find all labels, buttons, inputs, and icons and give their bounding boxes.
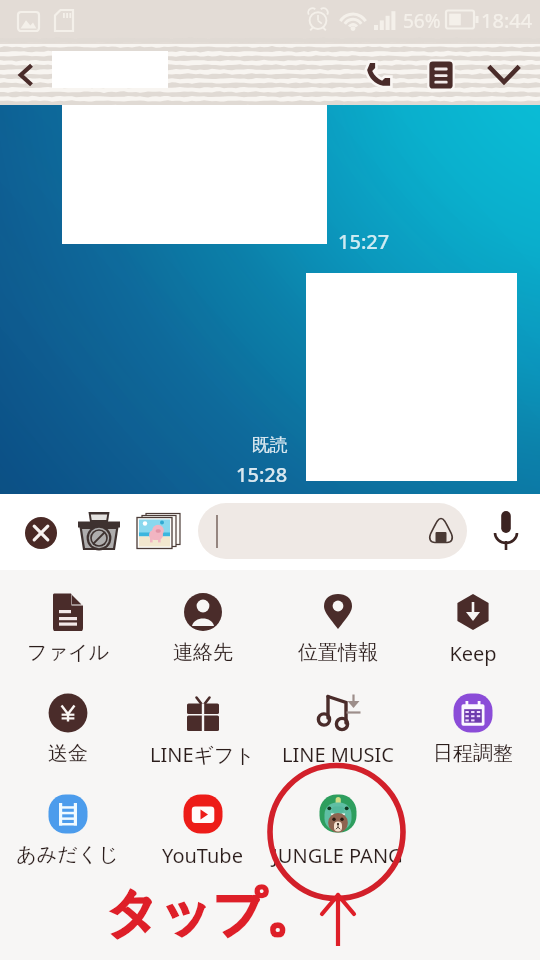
- button[interactable]: ファイル: [0, 570, 135, 671]
- button[interactable]: [198, 503, 467, 559]
- button[interactable]: YouTube: [135, 772, 270, 873]
- button[interactable]: LINE MUSIC: [270, 671, 405, 772]
- button[interactable]: 送金: [0, 671, 135, 772]
- button[interactable]: Voice message: [482, 506, 530, 556]
- staticText: タップ。: [106, 881, 318, 947]
- staticText: 日程調整: [433, 741, 513, 766]
- staticText: あみだくじ: [16, 842, 119, 867]
- button[interactable]: Close: [16, 508, 65, 557]
- staticText: 送金: [48, 741, 88, 766]
- staticText: YouTube: [162, 842, 243, 869]
- button[interactable]: 日程調整: [405, 671, 540, 772]
- button[interactable]: 連絡先: [135, 570, 270, 671]
- staticText: 18:44: [481, 7, 533, 34]
- button[interactable]: Menu: [415, 44, 467, 105]
- staticText: 連絡先: [173, 640, 233, 665]
- staticText: 位置情報: [298, 640, 378, 665]
- staticText: JUNGLE PANG: [272, 842, 403, 869]
- button[interactable]: Collapse: [478, 44, 530, 105]
- button[interactable]: 位置情報: [270, 570, 405, 671]
- staticText: Keep: [449, 640, 497, 667]
- button[interactable]: [405, 772, 540, 873]
- staticText: 既読: [252, 434, 288, 457]
- button[interactable]: Call: [352, 44, 404, 105]
- staticText: 15:28: [236, 461, 288, 488]
- button[interactable]: Camera: [72, 506, 125, 556]
- button[interactable]: Keep: [405, 570, 540, 671]
- button[interactable]: JUNGLE PANG: [270, 772, 405, 873]
- button[interactable]: LINEギフト: [135, 671, 270, 772]
- staticText: LINEギフト: [150, 741, 255, 768]
- staticText: 15:27: [338, 228, 390, 255]
- staticText: LINE MUSIC: [282, 741, 394, 768]
- staticText: ファイル: [27, 640, 109, 665]
- button[interactable]: Back: [0, 44, 52, 105]
- staticText: 56%: [403, 8, 441, 34]
- button[interactable]: あみだくじ: [0, 772, 135, 873]
- button[interactable]: Gallery: [129, 508, 185, 554]
